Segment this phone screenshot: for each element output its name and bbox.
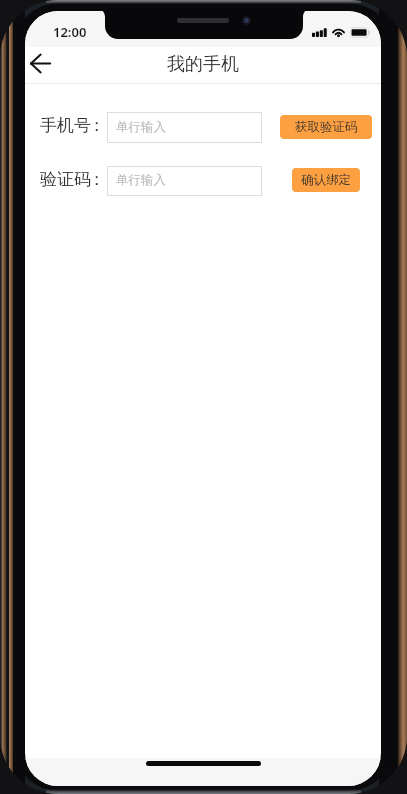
staticText: ： <box>88 169 105 190</box>
button[interactable]: 获取验证码 <box>280 115 372 139</box>
staticText: 我的手机 <box>167 53 239 76</box>
staticText: ： <box>88 115 105 136</box>
staticText: 12:00 <box>53 23 87 41</box>
button[interactable]: 单行输入 <box>107 112 262 143</box>
staticText: 获取验证码 <box>295 119 358 135</box>
staticText: 验证码 <box>40 169 91 190</box>
button[interactable]: 单行输入 <box>107 166 262 196</box>
staticText: 单行输入 <box>116 119 166 135</box>
button[interactable]: Back <box>25 47 67 84</box>
staticText: 确认绑定 <box>301 172 351 188</box>
staticText: 单行输入 <box>116 172 166 188</box>
button[interactable]: 确认绑定 <box>292 168 360 192</box>
staticText: 手机号 <box>40 115 91 136</box>
